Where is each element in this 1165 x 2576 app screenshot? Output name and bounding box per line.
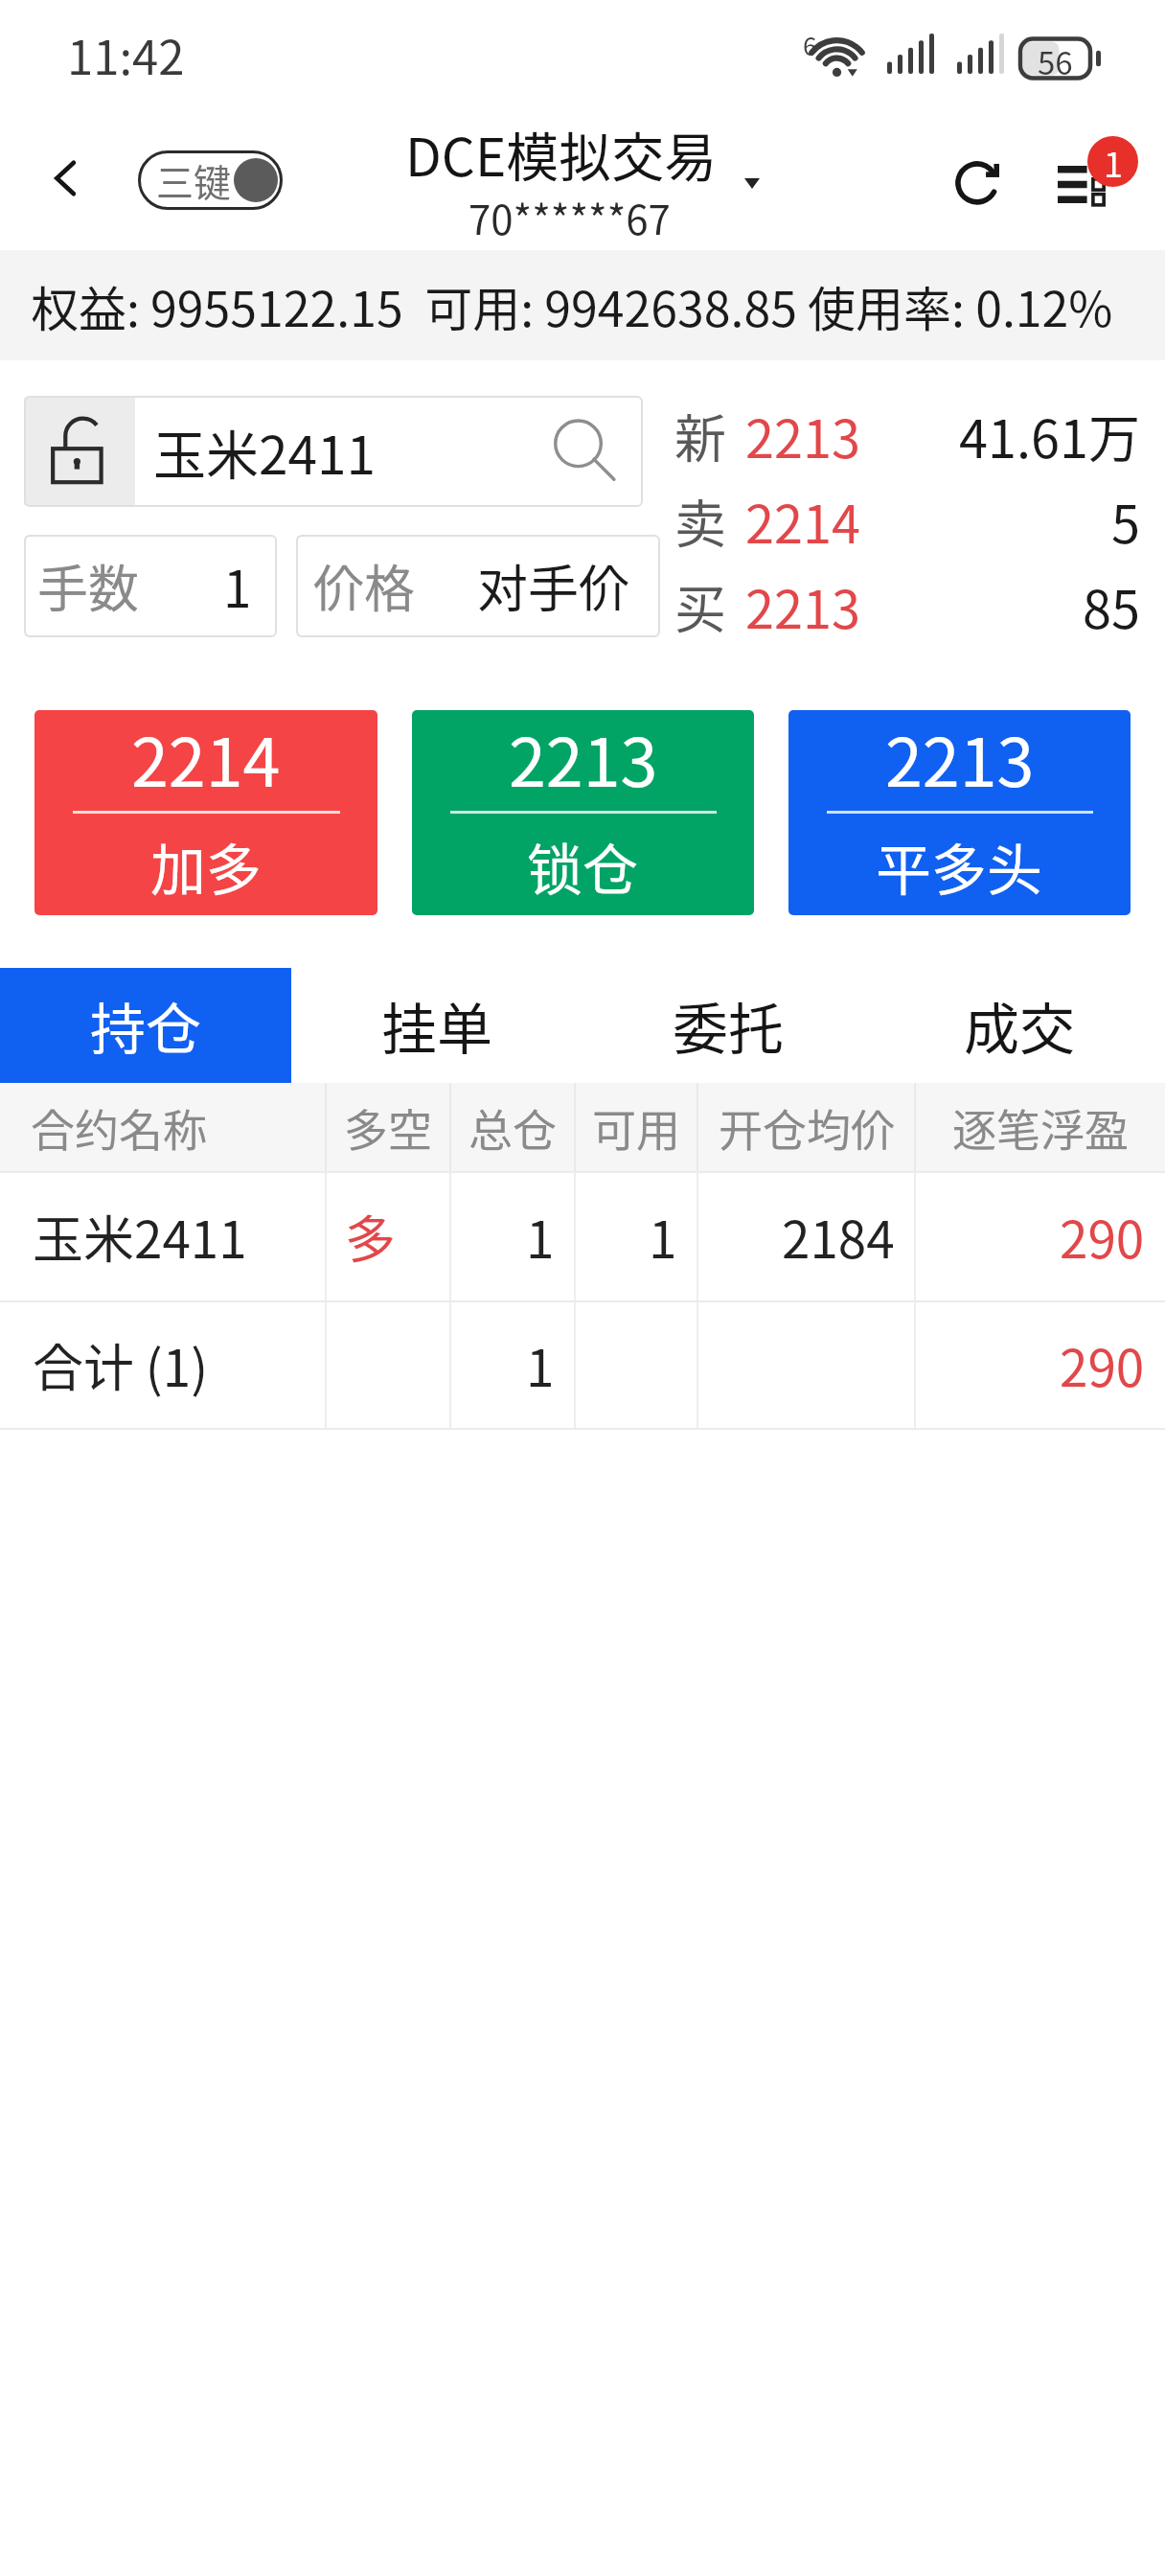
staticText: 权益: 9955122.15 可用: 9942638.85 使用率: 0.12% (31, 271, 1113, 340)
staticText: 1 (526, 1200, 555, 1274)
staticText: 开仓均价 (719, 1095, 895, 1160)
button[interactable]: 挂单 (291, 968, 582, 1083)
staticText: 1 (223, 549, 252, 623)
staticText: 290 (1060, 1328, 1145, 1402)
staticText: 合约名称 (31, 1095, 207, 1160)
staticText: 成交 (964, 985, 1076, 1066)
staticText: 持仓 (90, 985, 202, 1066)
staticText: 2214 (745, 483, 860, 558)
button[interactable]: 成交 (874, 968, 1165, 1083)
button[interactable]: 手数 (37, 535, 252, 637)
staticText: 2213 (745, 568, 860, 643)
staticText: 平多头 (876, 826, 1043, 907)
staticText: 2213 (885, 710, 1035, 806)
staticText: 85 (1083, 568, 1140, 643)
staticText: 1 (649, 1200, 677, 1274)
staticText: 56 (1038, 38, 1073, 79)
staticText: 逐笔浮盈 (952, 1095, 1129, 1160)
staticText: DCE模拟交易 (405, 115, 718, 192)
staticText: 41.61万 (959, 398, 1140, 472)
staticText: 2184 (782, 1200, 895, 1274)
staticText: 290 (1060, 1200, 1145, 1274)
button[interactable]: 三键 (138, 150, 283, 210)
staticText: 6 (803, 27, 817, 63)
staticText: 11:42 (67, 20, 185, 88)
button[interactable]: Unlock contract (24, 398, 135, 505)
staticText: 玉米2411 (33, 1200, 247, 1274)
button[interactable]: 持仓 (0, 968, 291, 1083)
staticText: 1 (1104, 137, 1123, 187)
staticText: 多 (345, 1200, 396, 1274)
staticText: 2213 (745, 398, 860, 472)
staticText: 对手价 (477, 549, 629, 623)
staticText: 新 (674, 398, 726, 472)
button[interactable]: Back (33, 145, 100, 212)
staticText: 总仓 (468, 1095, 557, 1160)
button[interactable]: Orders (1044, 126, 1140, 231)
staticText: 加多 (150, 826, 263, 907)
staticText: 锁仓 (527, 826, 639, 907)
staticText: 卖 (674, 483, 726, 558)
staticText: 5 (1111, 483, 1140, 558)
staticText: 2214 (131, 710, 281, 806)
staticText: 70******67 (468, 188, 671, 246)
staticText: 1 (526, 1328, 555, 1402)
button[interactable]: 价格 (313, 535, 629, 637)
staticText: 可用 (592, 1095, 680, 1160)
button[interactable]: 委托 (582, 968, 874, 1083)
staticText: 价格 (313, 549, 415, 623)
staticText: 手数 (37, 549, 139, 623)
staticText: 2213 (509, 710, 658, 806)
button[interactable]: 玉米2411 (0, 1172, 1165, 1301)
button[interactable]: 2213 (412, 710, 754, 915)
button[interactable]: Refresh (937, 136, 1023, 222)
button[interactable]: 2213 (788, 710, 1131, 915)
button[interactable]: 2214 (34, 710, 377, 915)
staticText: 合计 (1) (33, 1328, 209, 1402)
staticText: 委托 (673, 985, 785, 1066)
button[interactable]: Unlock contract (24, 396, 643, 507)
staticText: 挂单 (381, 985, 493, 1066)
staticText: 玉米2411 (153, 413, 377, 490)
staticText: 多空 (344, 1095, 432, 1160)
staticText: 三键 (156, 153, 232, 207)
staticText: 买 (674, 568, 726, 643)
